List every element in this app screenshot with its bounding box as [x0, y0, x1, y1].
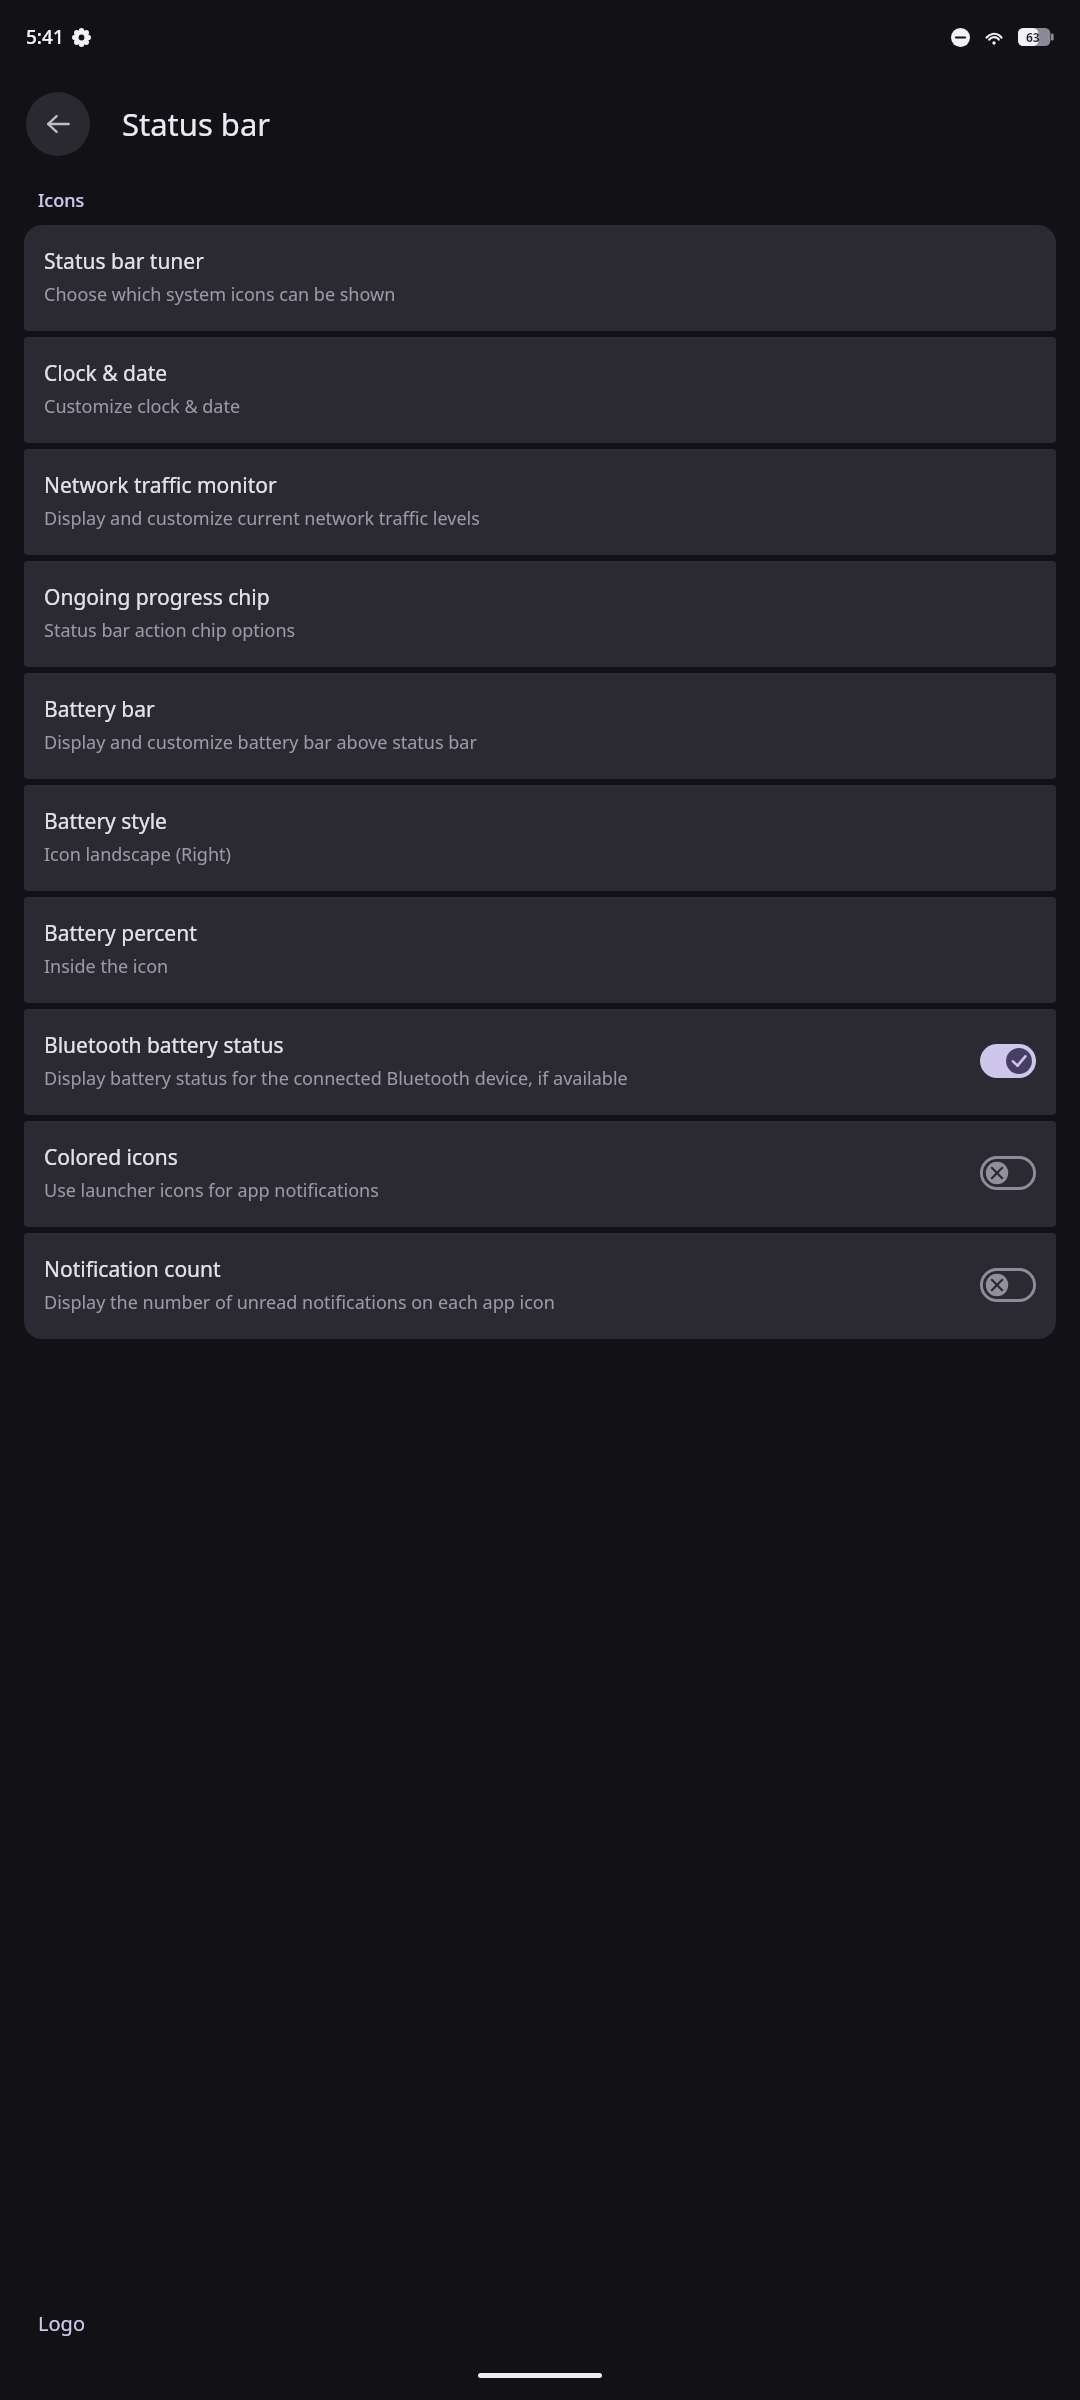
button[interactable]: Back — [26, 92, 90, 156]
staticText: Display the number of unread notificatio… — [44, 1290, 555, 1315]
staticText: Battery style — [44, 807, 167, 836]
staticText: Bluetooth battery status — [44, 1031, 284, 1060]
staticText: Icon landscape (Right) — [44, 842, 231, 867]
staticText: Choose which system icons can be shown — [44, 282, 396, 307]
staticText: Clock & date — [44, 359, 168, 388]
staticText: Display battery status for the connected… — [44, 1066, 628, 1091]
staticText: Inside the icon — [44, 954, 169, 979]
staticText: Notification count — [44, 1255, 221, 1284]
button[interactable]: Notification count — [24, 1233, 1056, 1339]
staticText: Logo — [38, 2310, 85, 2337]
staticText: Status bar — [122, 103, 271, 145]
button[interactable]: Battery percent — [24, 897, 1056, 1003]
button[interactable]: Battery bar — [24, 673, 1056, 779]
staticText: Battery percent — [44, 919, 197, 948]
button[interactable]: Status bar tuner — [24, 225, 1056, 331]
staticText: Battery bar — [44, 695, 155, 724]
button[interactable]: Bluetooth battery status — [24, 1009, 1056, 1115]
staticText: Colored icons — [44, 1143, 178, 1172]
button[interactable]: Ongoing progress chip — [24, 561, 1056, 667]
staticText: Network traffic monitor — [44, 471, 277, 500]
staticText: Status bar tuner — [44, 247, 204, 276]
staticText: 5:41 — [26, 24, 64, 50]
button[interactable]: Clock & date — [24, 337, 1056, 443]
button[interactable]: Toggle off — [980, 1268, 1036, 1302]
staticText: Icons — [38, 188, 85, 213]
staticText: 63 — [1026, 29, 1040, 45]
button[interactable]: Toggle on — [980, 1044, 1036, 1078]
staticText: Use launcher icons for app notifications — [44, 1178, 379, 1203]
staticText: Display and customize battery bar above … — [44, 730, 477, 755]
button[interactable]: Network traffic monitor — [24, 449, 1056, 555]
button[interactable]: Colored icons — [24, 1121, 1056, 1227]
staticText: Ongoing progress chip — [44, 583, 270, 612]
staticText: Customize clock & date — [44, 394, 241, 419]
staticText: Status bar action chip options — [44, 618, 296, 643]
staticText: Display and customize current network tr… — [44, 506, 480, 531]
button[interactable]: Battery style — [24, 785, 1056, 891]
button[interactable]: Toggle off — [980, 1156, 1036, 1190]
